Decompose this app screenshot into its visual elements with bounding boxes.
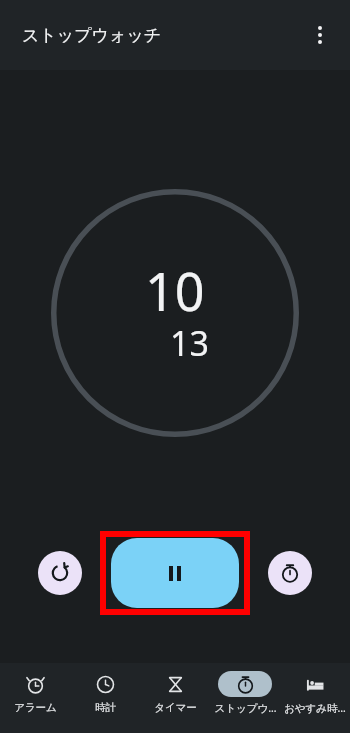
staticText: 10 <box>145 255 205 326</box>
button[interactable]: 時計 <box>70 663 140 714</box>
button[interactable]: Lap <box>268 551 312 595</box>
button[interactable]: ストップウ… <box>210 663 280 715</box>
button[interactable]: おやすみ時… <box>280 663 350 715</box>
staticText: 時計 <box>95 701 116 714</box>
staticText: 13 <box>170 320 209 366</box>
button[interactable]: Reset <box>38 551 82 595</box>
staticText: タイマー <box>154 701 197 714</box>
staticText: おやすみ時… <box>284 701 346 715</box>
staticText: ストップウ… <box>214 701 277 715</box>
button[interactable]: Pause <box>111 538 239 608</box>
button[interactable]: アラーム <box>0 663 70 714</box>
staticText: アラーム <box>14 701 57 714</box>
staticText: ストップウォッチ <box>22 25 162 46</box>
button[interactable]: タイマー <box>140 663 210 714</box>
button[interactable]: More options <box>302 17 338 53</box>
